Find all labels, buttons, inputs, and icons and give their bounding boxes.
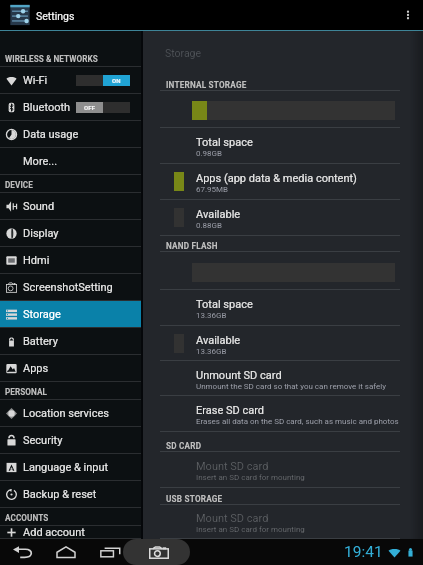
button[interactable]: Mount SD card [143, 505, 423, 538]
staticText: 0.98GB [196, 149, 223, 158]
staticText: USB STORAGE [166, 494, 223, 504]
button[interactable]: More options [397, 0, 419, 30]
button[interactable]: Home [51, 539, 81, 565]
button[interactable]: Available [143, 326, 423, 360]
staticText: 13.36GB [196, 347, 227, 356]
button[interactable]: Language & input [0, 454, 141, 480]
button[interactable]: Apps [0, 355, 141, 381]
button[interactable]: Turn off [76, 75, 130, 86]
staticText: Unmount SD card [196, 369, 282, 382]
staticText: Hdmi [23, 254, 50, 267]
staticText: Insert an SD card for mounting [196, 473, 305, 482]
button[interactable]: Recent apps [99, 539, 122, 565]
staticText: Apps (app data & media content) [196, 172, 357, 185]
button[interactable]: Available [143, 200, 423, 235]
button[interactable]: More... [0, 148, 141, 174]
staticText: Display [23, 227, 59, 240]
button[interactable]: Backup & reset [0, 481, 141, 507]
button[interactable]: Add account [0, 526, 141, 538]
staticText: Available [196, 334, 241, 347]
button[interactable]: Wi-Fi [0, 67, 141, 93]
button[interactable]: Unmount SD card [143, 361, 423, 395]
button[interactable]: Hdmi [0, 247, 141, 273]
staticText: Add account [23, 526, 85, 538]
staticText: ScreenshotSetting [23, 281, 113, 294]
button[interactable]: Data usage [0, 121, 141, 147]
staticText: OFF [84, 104, 96, 111]
button[interactable]: Storage [0, 301, 141, 327]
staticText: Insert an SD card for mounting [196, 525, 305, 534]
staticText: Sound [23, 200, 55, 213]
staticText: Location services [23, 407, 109, 420]
staticText: PERSONAL [5, 387, 47, 397]
staticText: 13.36GB [196, 311, 227, 320]
button[interactable]: Erase SD card [143, 396, 423, 431]
button[interactable]: Sound [0, 193, 141, 219]
staticText: SD CARD [166, 441, 202, 451]
staticText: Total space [196, 298, 253, 311]
staticText: Erase SD card [196, 404, 265, 417]
button[interactable]: Location services [0, 400, 141, 426]
staticText: Battery [23, 335, 58, 348]
staticText: NAND FLASH [166, 241, 218, 251]
button[interactable]: Total space [143, 128, 423, 163]
staticText: More... [23, 155, 58, 168]
button[interactable]: Total space [143, 290, 423, 325]
staticText: Total space [196, 136, 253, 149]
button[interactable]: Mount SD card [143, 452, 423, 487]
button[interactable]: Security [0, 427, 141, 453]
staticText: Storage [23, 308, 61, 321]
button[interactable]: ScreenshotSetting [0, 274, 141, 300]
staticText: DEVICE [5, 180, 33, 190]
staticText: ACCOUNTS [5, 513, 49, 523]
staticText: 67.95MB [196, 185, 229, 194]
staticText: Bluetooth [23, 101, 71, 114]
staticText: Data usage [23, 128, 79, 141]
staticText: Apps [23, 362, 49, 375]
button[interactable]: Battery [0, 328, 141, 354]
button[interactable]: Bluetooth [0, 94, 141, 120]
staticText: Storage [165, 47, 202, 59]
staticText: INTERNAL STORAGE [166, 80, 247, 90]
staticText: Mount SD card [196, 460, 269, 473]
button[interactable]: Back [7, 539, 38, 565]
button[interactable]: Apps (app data & media content) [143, 164, 423, 199]
staticText: Settings [36, 10, 75, 22]
staticText: Security [23, 434, 63, 447]
staticText: Mount SD card [196, 512, 269, 525]
staticText: ON [112, 77, 121, 84]
button[interactable]: Settings app icon [9, 4, 31, 26]
staticText: Language & input [23, 461, 109, 474]
staticText: 0.88GB [196, 221, 223, 230]
staticText: Unmount the SD card so that you can remo… [196, 382, 386, 391]
button[interactable]: Display [0, 220, 141, 246]
staticText: Wi-Fi [23, 74, 48, 87]
staticText: WIRELESS & NETWORKS [5, 54, 98, 64]
staticText: Erases all data on the SD card, such as … [196, 417, 399, 426]
staticText: 19:41 [344, 543, 383, 561]
button[interactable]: Turn on [76, 102, 130, 113]
staticText: Backup & reset [23, 488, 97, 501]
button[interactable]: Screenshot [125, 539, 192, 565]
staticText: Available [196, 208, 241, 221]
